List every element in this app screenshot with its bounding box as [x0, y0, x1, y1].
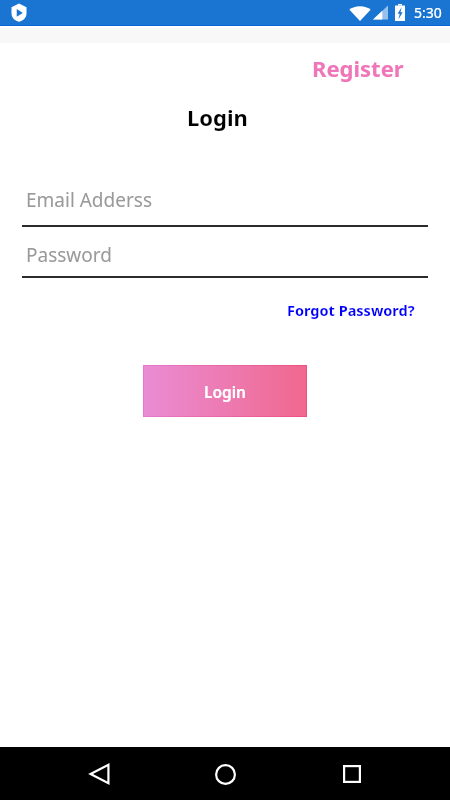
staticText: Register [312, 53, 404, 83]
button[interactable]: Register [304, 49, 412, 87]
button[interactable]: Recents [329, 751, 375, 797]
staticText: 5:30 [414, 3, 442, 22]
button[interactable]: Home [202, 751, 248, 797]
staticText: Email Adderss [26, 187, 153, 213]
button[interactable]: Back [76, 751, 122, 797]
button[interactable]: Forgot Password? [281, 296, 421, 324]
staticText: Login [204, 381, 247, 402]
staticText: Login [187, 102, 248, 132]
staticText: Password [26, 242, 112, 266]
button[interactable]: Login [144, 366, 306, 416]
other: Play Protect [11, 3, 27, 22]
staticText: Forgot Password? [287, 300, 415, 320]
